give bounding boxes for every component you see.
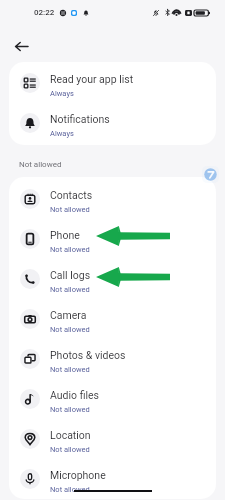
staticText: Always xyxy=(50,129,74,138)
staticText: Not allowed xyxy=(50,325,90,334)
button[interactable]: Notifications xyxy=(9,103,216,143)
staticText: Not allowed xyxy=(50,205,90,214)
staticText: 02:22 xyxy=(34,8,55,17)
staticText: Not allowed xyxy=(50,285,90,294)
staticText: Not allowed xyxy=(50,485,90,494)
staticText: Not allowed xyxy=(50,365,90,374)
button[interactable]: Location xyxy=(9,419,216,459)
button[interactable]: Read your app list xyxy=(9,63,216,103)
staticText: Not allowed xyxy=(50,445,90,454)
staticText: Photos & videos xyxy=(50,349,126,361)
staticText: Location xyxy=(50,429,91,441)
button[interactable]: Back xyxy=(9,34,33,58)
staticText: Always xyxy=(50,89,74,98)
button[interactable]: Call logs xyxy=(9,259,216,299)
staticText: Read your app list xyxy=(50,73,134,85)
staticText: Not allowed xyxy=(50,405,90,414)
button[interactable]: Contacts xyxy=(9,179,216,219)
button[interactable]: Assistant xyxy=(202,166,219,183)
staticText: Notifications xyxy=(50,113,110,125)
staticText: Phone xyxy=(50,229,80,241)
button[interactable]: Phone xyxy=(9,219,216,259)
button[interactable]: Microphone xyxy=(9,459,216,499)
button[interactable]: Audio files xyxy=(9,379,216,419)
staticText: Not allowed xyxy=(19,160,62,169)
staticText: Call logs xyxy=(50,269,91,281)
button[interactable]: Photos & videos xyxy=(9,339,216,379)
staticText: Not allowed xyxy=(50,245,90,254)
staticText: Contacts xyxy=(50,189,93,201)
button[interactable]: Camera xyxy=(9,299,216,339)
staticText: Microphone xyxy=(50,469,106,481)
staticText: Camera xyxy=(50,309,87,321)
staticText: Audio files xyxy=(50,389,100,401)
